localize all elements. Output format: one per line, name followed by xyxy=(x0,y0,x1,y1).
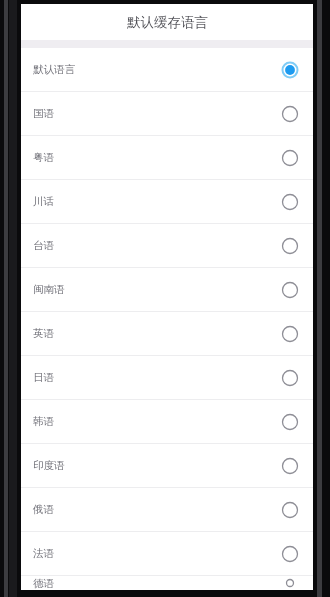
staticText: 俄语 xyxy=(33,503,54,516)
other: Selected 默认语言 xyxy=(279,59,301,81)
staticText: 韩语 xyxy=(33,415,54,428)
staticText: 默认缓存语言 xyxy=(127,14,208,31)
other: Select 闽南语 xyxy=(279,279,301,301)
staticText: 川话 xyxy=(33,195,54,208)
staticText: 台语 xyxy=(33,239,54,252)
button[interactable]: 法语 xyxy=(21,532,313,575)
button[interactable]: 粤语 xyxy=(21,136,313,179)
other: Select 韩语 xyxy=(279,411,301,433)
button[interactable]: 川话 xyxy=(21,180,313,223)
other: Select 川话 xyxy=(279,191,301,213)
other: Select 俄语 xyxy=(279,499,301,521)
other: Select 国语 xyxy=(279,103,301,125)
other: Select 英语 xyxy=(279,323,301,345)
staticText: 日语 xyxy=(33,371,54,384)
button[interactable]: 英语 xyxy=(21,312,313,355)
button[interactable]: 德语 xyxy=(21,576,313,590)
other: Select 粤语 xyxy=(279,147,301,169)
staticText: 印度语 xyxy=(33,459,65,472)
other: Select 台语 xyxy=(279,235,301,257)
staticText: 德语 xyxy=(33,577,54,590)
button[interactable]: 韩语 xyxy=(21,400,313,443)
button[interactable]: 闽南语 xyxy=(21,268,313,311)
button[interactable]: 国语 xyxy=(21,92,313,135)
button[interactable]: 俄语 xyxy=(21,488,313,531)
other: Select 法语 xyxy=(279,543,301,565)
button[interactable]: 日语 xyxy=(21,356,313,399)
other: Select 德语 xyxy=(279,576,301,590)
staticText: 默认语言 xyxy=(33,63,75,76)
staticText: 法语 xyxy=(33,547,54,560)
staticText: 国语 xyxy=(33,107,54,120)
button[interactable]: 默认语言 xyxy=(21,48,313,91)
staticText: 英语 xyxy=(33,327,54,340)
staticText: 闽南语 xyxy=(33,283,65,296)
other: Select 日语 xyxy=(279,367,301,389)
other: Select 印度语 xyxy=(279,455,301,477)
button[interactable]: 印度语 xyxy=(21,444,313,487)
button[interactable]: 台语 xyxy=(21,224,313,267)
staticText: 粤语 xyxy=(33,151,54,164)
